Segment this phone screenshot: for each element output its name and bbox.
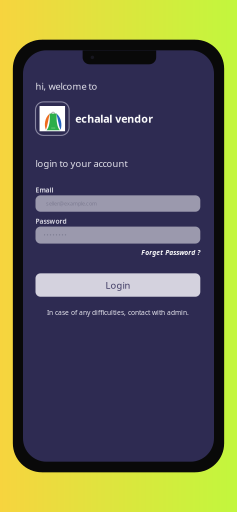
staticText: hi, welcome to <box>35 80 97 92</box>
staticText: echalal vendor <box>75 112 153 126</box>
button[interactable]: Forget Password ? <box>35 248 200 257</box>
staticText: In case of any difficulties, contact wit… <box>47 308 189 317</box>
staticText: seller@example.com <box>46 200 97 207</box>
staticText: Forget Password ? <box>141 248 200 257</box>
staticText: login to your account <box>35 157 127 170</box>
staticText: Login <box>105 279 130 291</box>
button[interactable]: Login <box>35 273 200 297</box>
staticText: Password <box>35 217 66 226</box>
staticText: • • • • • • • • <box>43 232 66 239</box>
staticText: Email <box>35 186 53 194</box>
